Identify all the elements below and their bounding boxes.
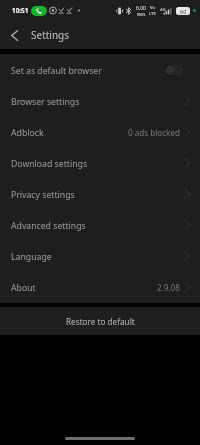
- staticText: About: [11, 282, 36, 294]
- staticText: Advanced settings: [11, 220, 86, 232]
- button[interactable]: Advanced settings: [0, 209, 200, 240]
- staticText: Settings: [31, 28, 70, 42]
- staticText: KB/S: [137, 12, 146, 17]
- staticText: 6.00: [136, 5, 146, 12]
- button[interactable]: About: [0, 271, 200, 302]
- button[interactable]: Adblock: [0, 116, 200, 147]
- staticText: 60: [180, 8, 187, 15]
- staticText: Privacy settings: [11, 189, 75, 201]
- staticText: 2.9.08: [157, 282, 180, 293]
- staticText: LTE: [149, 11, 156, 17]
- staticText: 10:51: [12, 6, 29, 15]
- staticText: Set as default browser: [11, 65, 102, 77]
- staticText: 4G: [160, 7, 166, 13]
- staticText: Restore to default: [66, 316, 135, 327]
- staticText: Language: [11, 251, 52, 263]
- button[interactable]: Download settings: [0, 147, 200, 178]
- staticText: Download settings: [11, 158, 88, 170]
- staticText: Browser settings: [11, 96, 80, 108]
- button[interactable]: Browser settings: [0, 85, 200, 116]
- staticText: Vo: [150, 5, 155, 11]
- button[interactable]: Back: [0, 21, 28, 49]
- button[interactable]: Language: [0, 240, 200, 271]
- button[interactable]: Set as default browser: [0, 54, 200, 85]
- button[interactable]: Restore to default: [0, 307, 200, 335]
- button[interactable]: Privacy settings: [0, 178, 200, 209]
- staticText: Adblock: [11, 127, 44, 139]
- staticText: 0 ads blocked: [128, 127, 180, 138]
